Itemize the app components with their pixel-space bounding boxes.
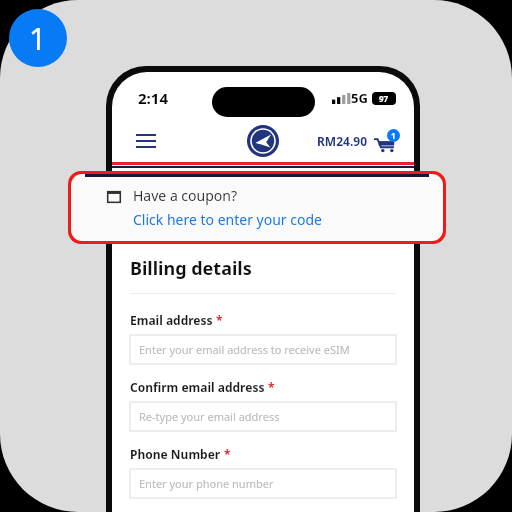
button[interactable]: Have a coupon? [71,174,443,241]
button[interactable]: RM24.90 [317,129,400,153]
staticText: Enter your phone number [139,476,274,491]
staticText: 5G [351,89,368,107]
button[interactable]: Click here to enter your code [133,210,322,229]
button[interactable]: 1 [9,9,67,67]
button[interactable]: Enter your email address to receive eSIM [130,335,396,364]
button[interactable]: Enter your phone number [130,469,396,498]
button[interactable]: Menu [132,127,160,155]
staticText: Enter your email address to receive eSIM [139,342,350,357]
staticText: * [216,312,223,328]
other: Cart [374,129,400,153]
staticText: 97 [379,93,389,104]
button[interactable]: Re-type your email address [130,402,396,431]
staticText: 1 [29,18,47,59]
staticText: 2:14 [138,88,168,108]
staticText: * [268,379,275,395]
staticText: RM24.90 [317,133,368,149]
staticText: Confirm email address [130,379,265,395]
staticText: * [224,446,231,462]
button[interactable]: Home logo [247,125,279,157]
staticText: Re-type your email address [139,409,280,424]
staticText: Have a coupon? [133,186,238,205]
staticText: Billing details [130,256,252,281]
staticText: Email address [130,312,213,328]
staticText: 1 [391,130,396,141]
staticText: Phone Number [130,446,221,462]
